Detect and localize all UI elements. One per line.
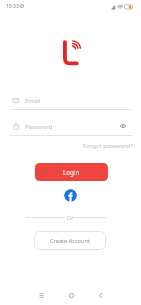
- button[interactable]: Password: [8, 120, 141, 135]
- button[interactable]: Sign in with Facebook: [64, 189, 77, 202]
- staticText: 10:33: [6, 3, 19, 10]
- button[interactable]: Show password: [120, 123, 126, 129]
- button[interactable]: Back: [95, 290, 106, 301]
- staticText: Create Account: [50, 237, 90, 245]
- staticText: Login: [63, 168, 80, 176]
- staticText: Forgot password?: [83, 142, 134, 150]
- staticText: Password: [25, 123, 53, 131]
- button[interactable]: Recents: [36, 290, 47, 301]
- staticText: Or: [67, 214, 74, 221]
- button[interactable]: Login: [35, 163, 108, 181]
- button[interactable]: Create Account: [34, 231, 106, 250]
- button[interactable]: Home: [66, 290, 77, 301]
- button[interactable]: Forgot password?: [82, 141, 135, 151]
- staticText: Email: [25, 97, 41, 105]
- button[interactable]: Email: [8, 94, 141, 109]
